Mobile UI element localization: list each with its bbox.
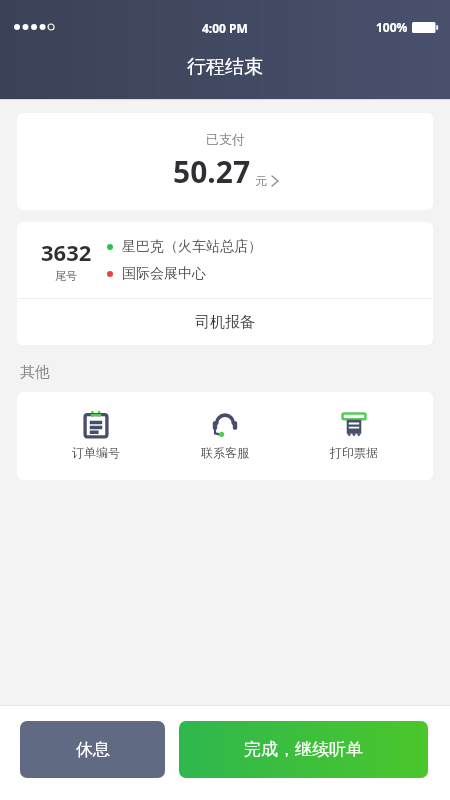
- staticText: 行程结束: [187, 55, 263, 79]
- button[interactable]: 3632: [17, 222, 433, 298]
- button[interactable]: 完成，继续听单: [179, 721, 428, 778]
- other: 订单编号: [83, 412, 109, 438]
- staticText: 完成，继续听单: [244, 739, 363, 760]
- staticText: 100%: [376, 19, 408, 35]
- staticText: 国际会展中心: [122, 265, 206, 283]
- staticText: 3632: [41, 237, 92, 267]
- button[interactable]: 订单编号: [46, 406, 146, 466]
- button[interactable]: 打印票据: [304, 406, 404, 466]
- button[interactable]: 休息: [20, 721, 165, 778]
- staticText: 已支付: [206, 131, 245, 147]
- button[interactable]: 司机报备: [17, 299, 433, 345]
- staticText: 星巴克（火车站总店）: [122, 238, 262, 256]
- staticText: 元: [255, 173, 267, 188]
- staticText: 司机报备: [195, 313, 255, 332]
- button[interactable]: 已支付: [17, 113, 433, 210]
- button[interactable]: 联系客服: [175, 406, 275, 466]
- staticText: 订单编号: [72, 445, 120, 460]
- staticText: 联系客服: [201, 445, 249, 460]
- other: 联系客服: [212, 412, 238, 438]
- staticText: 其他: [20, 363, 50, 382]
- other: 打印票据: [341, 412, 367, 438]
- staticText: 尾号: [55, 269, 77, 283]
- staticText: 4:00 PM: [202, 20, 248, 36]
- staticText: 打印票据: [330, 445, 378, 460]
- staticText: 50.27: [173, 151, 251, 192]
- staticText: 休息: [76, 739, 110, 760]
